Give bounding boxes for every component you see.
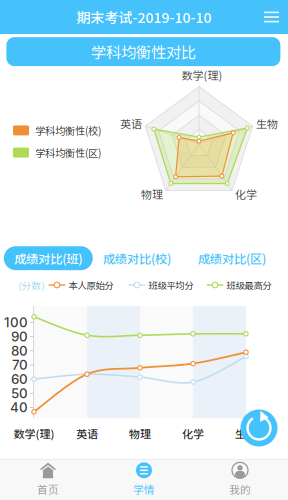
staticText: 生物 xyxy=(235,425,257,441)
staticText: 学科均衡性对比 xyxy=(91,40,196,63)
staticText: 40 xyxy=(10,399,28,415)
staticText: 物理 xyxy=(141,186,163,202)
staticText: 首页 xyxy=(37,481,59,497)
staticText: 物理 xyxy=(129,425,151,441)
staticText: 化学 xyxy=(235,186,257,202)
staticText: 成绩对比(校) xyxy=(103,249,171,267)
staticText: 成绩对比(区) xyxy=(198,249,266,267)
button[interactable]: 成绩对比(区) xyxy=(187,246,276,270)
staticText: 学科均衡性(校) xyxy=(35,123,101,138)
staticText: 70 xyxy=(12,357,28,373)
staticText: 90 xyxy=(11,329,28,345)
staticText: 我的 xyxy=(229,481,251,497)
staticText: 英语 xyxy=(120,115,142,131)
staticText: 生物 xyxy=(256,115,278,131)
button[interactable]: 成绩对比(校) xyxy=(92,246,181,270)
staticText: 成绩对比(班) xyxy=(14,249,82,267)
staticText: 50 xyxy=(11,385,28,401)
staticText: 本人原始分 xyxy=(68,278,113,292)
staticText: 学情 xyxy=(133,481,155,497)
staticText: 班级最高分 xyxy=(226,278,271,292)
staticText: 化学 xyxy=(182,425,204,441)
staticText: 80 xyxy=(11,343,28,359)
staticText: 期末考试-2019-10-10 xyxy=(76,7,211,27)
button[interactable]: 成绩对比(班) xyxy=(4,246,93,270)
staticText: 60 xyxy=(11,371,28,387)
button[interactable]: Menu xyxy=(255,1,288,33)
staticText: 英语 xyxy=(76,425,98,441)
button[interactable]: Refresh xyxy=(240,409,277,446)
staticText: 数学(理) xyxy=(181,67,222,83)
staticText: 数学(理) xyxy=(13,425,54,441)
staticText: 学科均衡性(区) xyxy=(35,145,101,160)
button[interactable]: 我的 xyxy=(192,459,288,500)
staticText: (分数) xyxy=(18,278,44,292)
button[interactable]: 首页 xyxy=(0,459,96,500)
staticText: 100 xyxy=(4,314,28,330)
staticText: 班级平均分 xyxy=(148,278,193,292)
button[interactable]: 学科均衡性对比 xyxy=(6,37,280,66)
button[interactable]: 学情 xyxy=(96,459,192,500)
